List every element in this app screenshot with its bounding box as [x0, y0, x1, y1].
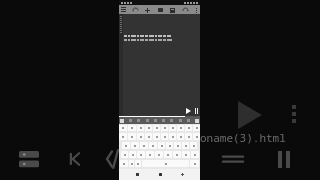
button[interactable]: Menu — [121, 7, 126, 12]
button[interactable]: Key — [174, 142, 181, 149]
button[interactable]: Key — [140, 142, 148, 149]
button[interactable]: Key — [190, 160, 199, 167]
button[interactable]: Key — [145, 125, 152, 131]
button[interactable]: Open folder — [157, 6, 164, 14]
button[interactable]: Key — [185, 133, 192, 140]
button[interactable]: Undo — [132, 6, 139, 14]
button[interactable]: Key — [137, 133, 144, 140]
button[interactable]: Key — [129, 160, 134, 167]
button[interactable]: Home — [155, 170, 165, 179]
button[interactable]: Key — [129, 151, 136, 158]
button[interactable]: Key — [185, 125, 192, 131]
button[interactable]: Subtitles — [14, 144, 44, 174]
button[interactable]: Key — [137, 151, 145, 158]
button[interactable]: Key — [177, 133, 184, 140]
button[interactable]: Key — [164, 151, 172, 158]
button[interactable]: Key — [149, 142, 157, 149]
button[interactable]: Key — [177, 125, 184, 131]
button[interactable]: Key — [146, 151, 154, 158]
button[interactable]: Play — [232, 98, 266, 132]
button[interactable]: Key — [122, 142, 130, 149]
button[interactable]: Key — [193, 133, 200, 140]
staticText: oname(3).html — [200, 130, 286, 145]
button[interactable]: Key — [161, 133, 168, 140]
button[interactable]: More options — [286, 100, 302, 128]
button[interactable]: Rewind — [106, 144, 119, 174]
button[interactable]: Previous — [62, 144, 92, 174]
button[interactable]: Key — [137, 125, 144, 131]
button[interactable]: Pause — [270, 144, 300, 174]
button[interactable]: Key — [173, 151, 181, 158]
button[interactable]: Recents — [177, 170, 187, 179]
button[interactable]: New file — [144, 6, 151, 14]
button[interactable]: Key — [191, 151, 199, 158]
button[interactable]: Key — [193, 125, 200, 131]
button[interactable]: Key — [166, 142, 173, 149]
button[interactable]: Key — [169, 133, 176, 140]
button[interactable]: Key — [155, 151, 163, 158]
button[interactable]: Key — [153, 133, 160, 140]
button[interactable]: Key — [128, 125, 136, 131]
button[interactable]: Key — [119, 133, 127, 140]
button[interactable]: Key — [169, 125, 176, 131]
button[interactable]: Redo — [182, 6, 189, 14]
button[interactable]: Playlist — [218, 144, 248, 174]
button[interactable]: Back — [132, 170, 142, 179]
button[interactable]: Key — [119, 125, 127, 131]
button[interactable]: Key — [128, 133, 136, 140]
button[interactable]: Key — [135, 160, 141, 167]
button[interactable]: Key — [142, 160, 189, 167]
button[interactable]: Key — [153, 125, 160, 131]
button[interactable]: Save — [169, 6, 176, 14]
button[interactable]: Key — [121, 151, 128, 158]
button[interactable]: Key — [182, 142, 189, 149]
button[interactable]: Play — [185, 107, 192, 115]
button[interactable]: Key — [131, 142, 139, 149]
button[interactable]: Key — [190, 142, 197, 149]
button[interactable]: Key — [120, 160, 128, 167]
button[interactable]: Key — [161, 125, 168, 131]
button[interactable]: Key — [145, 133, 152, 140]
button[interactable]: Key — [158, 142, 165, 149]
button[interactable]: Key — [182, 151, 190, 158]
button[interactable]: More — [194, 7, 198, 13]
